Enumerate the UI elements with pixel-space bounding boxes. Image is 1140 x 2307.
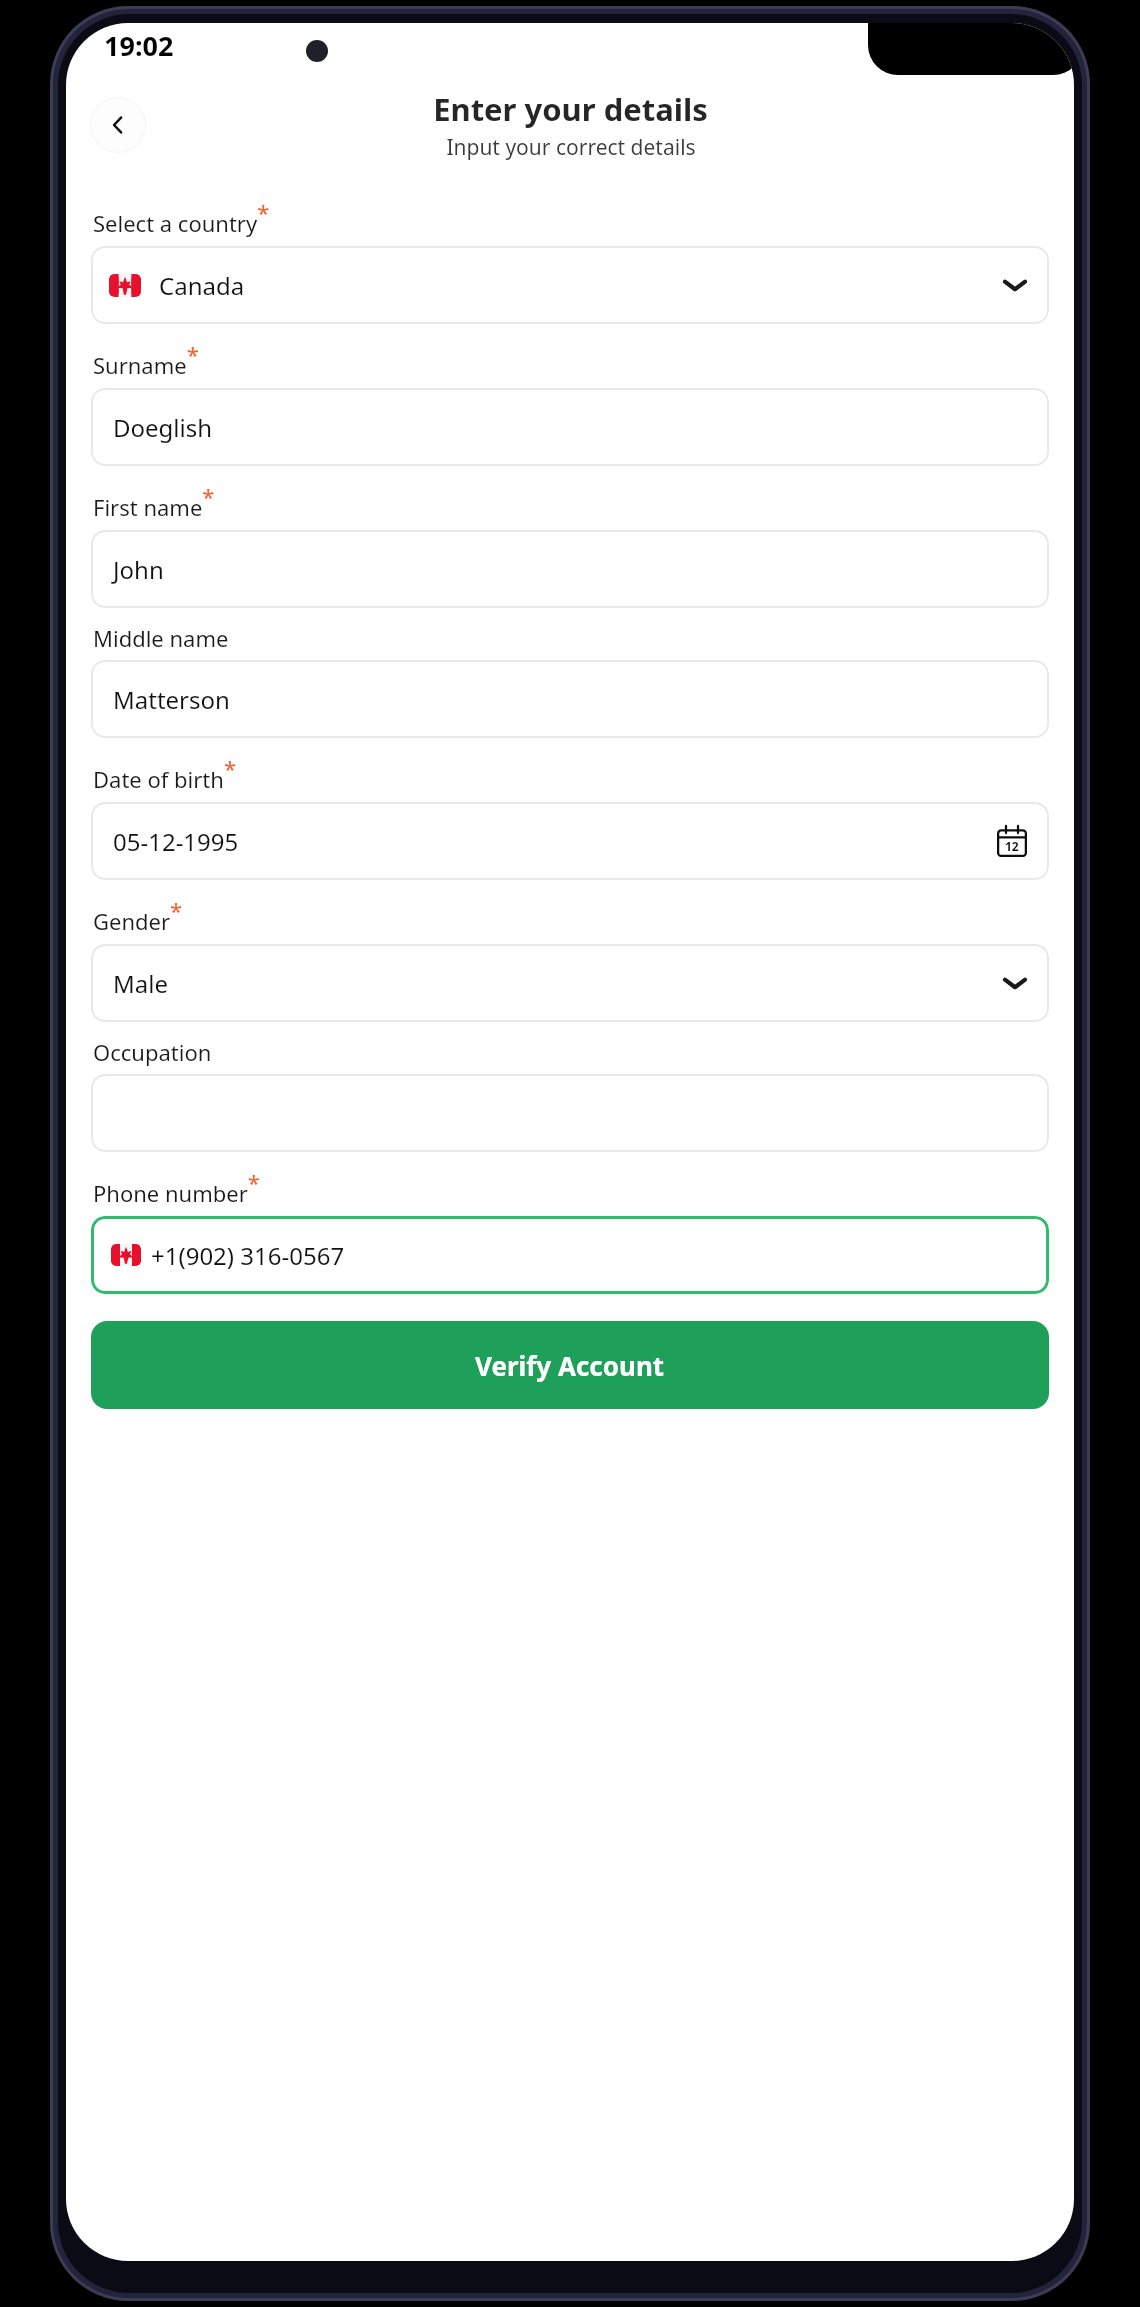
staticText: 19:02 [104,27,174,64]
button[interactable]: +1(902) 316-0567 [91,1216,1049,1294]
button[interactable]: Canada [91,246,1049,324]
staticText: Enter your details [433,88,708,130]
staticText: Male [113,967,168,1000]
staticText: 12 [1005,838,1019,854]
staticText: 05-12-1995 [113,825,239,858]
staticText: Surname* [93,339,199,381]
staticText: Input your correct details [446,133,696,162]
staticText: Verify Account [475,1348,665,1383]
staticText: Occupation [93,1037,212,1067]
staticText: Doeglish [113,411,213,444]
staticText: Select a country* [93,197,270,239]
staticText: Canada [159,269,245,302]
button[interactable]: Doeglish [91,388,1049,466]
button[interactable]: John [91,530,1049,608]
staticText: Date of birth* [93,753,237,795]
button[interactable]: Back [90,97,146,153]
button[interactable]: 05-12-1995 [91,802,1049,880]
button[interactable]: Matterson [91,660,1049,738]
staticText: Gender* [93,895,183,937]
button[interactable] [91,1074,1049,1152]
staticText: Phone number* [93,1167,260,1209]
staticText: John [113,553,164,586]
staticText: +1(902) 316-0567 [151,1239,345,1272]
button[interactable]: Verify Account [91,1321,1049,1409]
staticText: Matterson [113,683,230,716]
button[interactable]: Male [91,944,1049,1022]
staticText: Middle name [93,623,229,653]
staticText: First name* [93,481,215,523]
